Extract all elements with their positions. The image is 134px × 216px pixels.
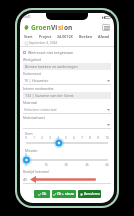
staticText: 0 — [25, 136, 27, 140]
staticText: September 4, 2024 — [29, 41, 58, 45]
staticText: Interne medewerker — [23, 87, 54, 91]
staticText: 09:41 — [23, 15, 31, 19]
staticText: Weersoort niet toegestaan — [28, 50, 74, 55]
button[interactable]: 133 | Suzanne van der Geest — [23, 92, 111, 99]
staticText: Materiaalsoort — [23, 116, 46, 120]
button[interactable] — [25, 140, 109, 146]
button[interactable]: Start — [23, 34, 34, 39]
button[interactable]: Afwad — [97, 34, 111, 39]
staticText: Annuleren — [84, 192, 100, 196]
staticText: Werkgebied — [23, 58, 42, 62]
staticText: Selecteer materiaal — [24, 107, 107, 112]
button[interactable]: Project — [38, 34, 53, 39]
staticText: Vi — [51, 23, 58, 32]
button[interactable]: Ok + nieuw — [52, 190, 76, 198]
staticText: 24-0012X — [57, 34, 73, 39]
staticText: 2 — [41, 136, 43, 140]
staticText: si — [58, 23, 64, 32]
staticText: 1 — [33, 136, 35, 140]
staticText: Ok + nieuw — [57, 192, 75, 196]
staticText: 7 — [81, 136, 83, 140]
staticText: Reistijd (minuten) — [23, 170, 50, 174]
staticText: 60 — [105, 163, 109, 167]
staticText: 15 — [44, 163, 48, 167]
staticText: Start — [24, 34, 33, 39]
staticText: Project — [39, 34, 52, 39]
staticText: 5 — [65, 136, 67, 140]
button[interactable]: Menu — [102, 24, 110, 31]
button[interactable]: Selecteer materiaal — [23, 106, 111, 114]
staticText: 4 — [57, 136, 59, 140]
staticText: 3 — [49, 136, 51, 140]
staticText: 133 | Suzanne van der Geest — [25, 93, 74, 98]
staticText: on — [64, 23, 73, 32]
staticText: Afwad — [98, 34, 110, 39]
button[interactable] — [25, 157, 109, 163]
staticText: 8 — [89, 136, 91, 140]
button[interactable] — [23, 121, 111, 129]
staticText: 0 — [25, 163, 27, 167]
button[interactable]: Boeken — [78, 34, 94, 39]
button[interactable]: Annuleren — [78, 190, 101, 198]
staticText: 6 — [73, 136, 75, 140]
button[interactable]: 10 | Houwster — [23, 77, 111, 85]
button[interactable]: Bomen kweken en aanbrengen — [23, 63, 111, 70]
staticText: Minuten — [25, 149, 38, 153]
staticText: Materiaal — [23, 101, 38, 105]
staticText: 30 — [64, 163, 68, 167]
staticText: 10 | Houwster — [24, 78, 107, 83]
staticText: Bomen kweken en aanbrengen — [25, 64, 78, 69]
staticText: Kostensoort — [23, 72, 42, 76]
staticText: Groen — [31, 23, 51, 32]
staticText: Ok — [42, 192, 47, 196]
staticText: 10 — [105, 136, 109, 140]
staticText: 0 — [25, 153, 27, 157]
button[interactable]: Weersoort niet toegestaan — [23, 49, 111, 56]
staticText: 9 — [97, 136, 99, 140]
staticText: Uren — [25, 132, 33, 136]
staticText: 45 — [85, 163, 89, 167]
staticText: 45 — [23, 177, 28, 182]
staticText: Boeken — [79, 34, 93, 39]
button[interactable]: 24-0012X — [56, 34, 74, 39]
button[interactable]: Ok — [34, 190, 50, 198]
